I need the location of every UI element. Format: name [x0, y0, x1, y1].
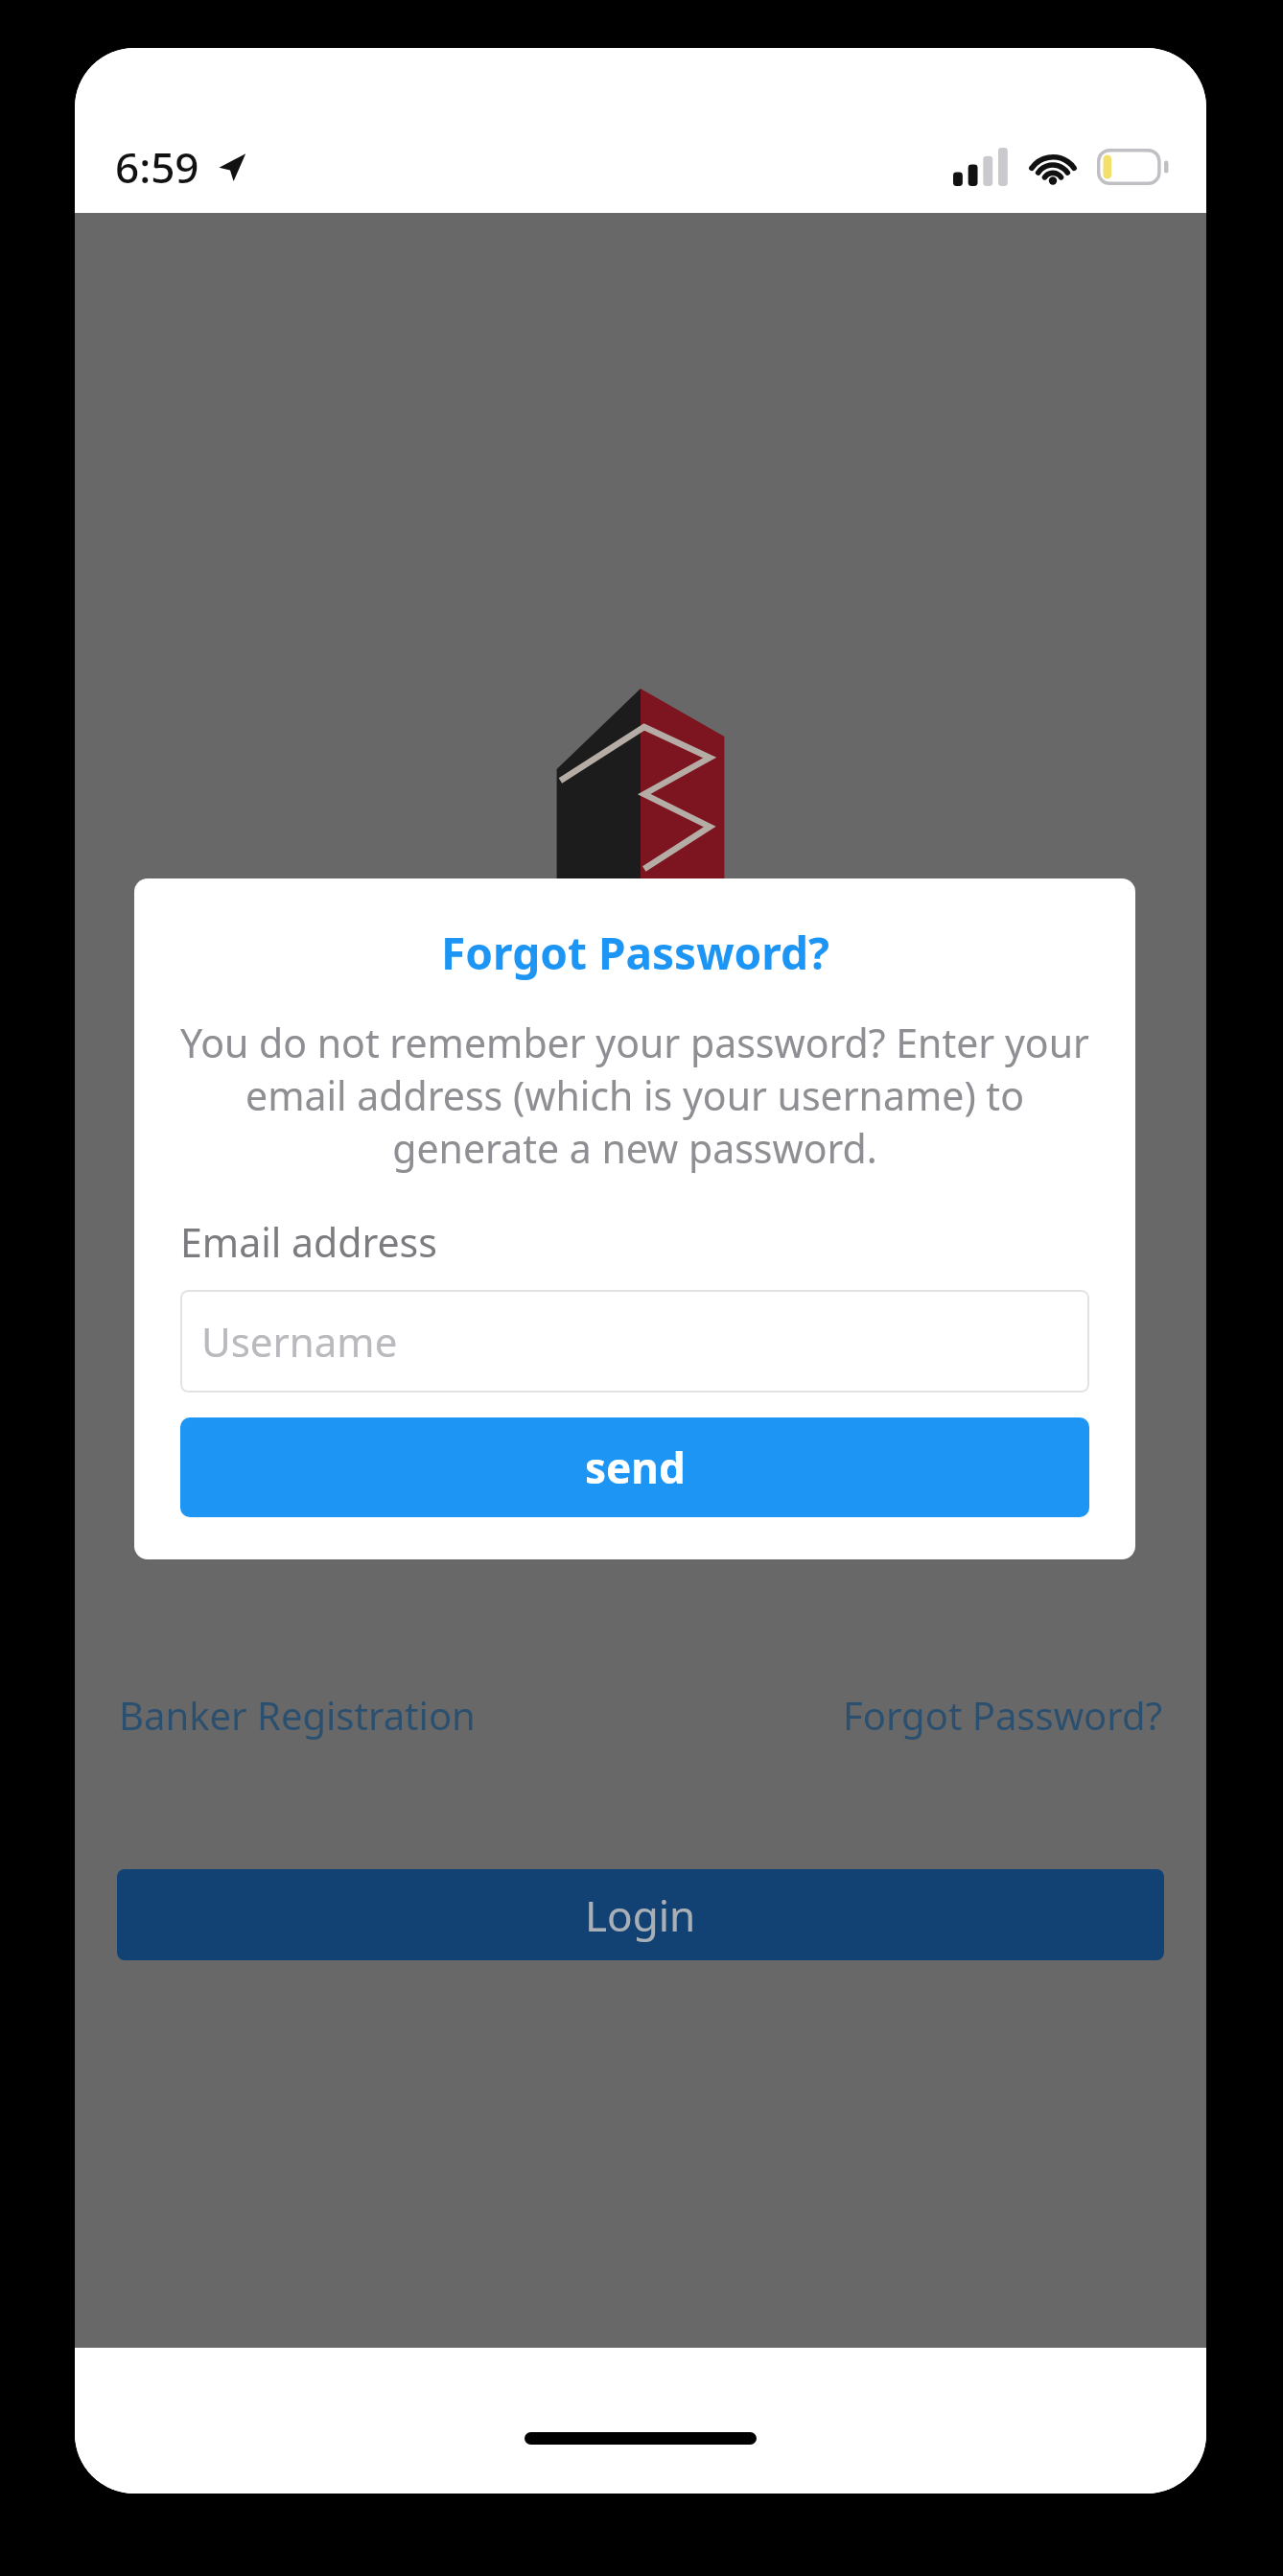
staticText: Banker Registration — [119, 1689, 476, 1741]
button[interactable]: Banker Registration — [119, 1689, 476, 1741]
staticText: 6:59 — [115, 138, 199, 196]
staticText: send — [585, 1439, 686, 1496]
button[interactable]: Login — [117, 1869, 1164, 1960]
button[interactable]: Username — [180, 1290, 1089, 1393]
button[interactable]: Forgot Password? — [843, 1689, 1162, 1741]
staticText: Forgot Password? — [441, 923, 829, 983]
staticText: Email address — [180, 1215, 1089, 1269]
staticText: Forgot Password? — [843, 1689, 1162, 1741]
button[interactable]: send — [180, 1417, 1089, 1517]
staticText: You do not remember your password? Enter… — [180, 1016, 1089, 1175]
staticText: Login — [585, 1886, 696, 1944]
staticText: Username — [201, 1314, 398, 1369]
